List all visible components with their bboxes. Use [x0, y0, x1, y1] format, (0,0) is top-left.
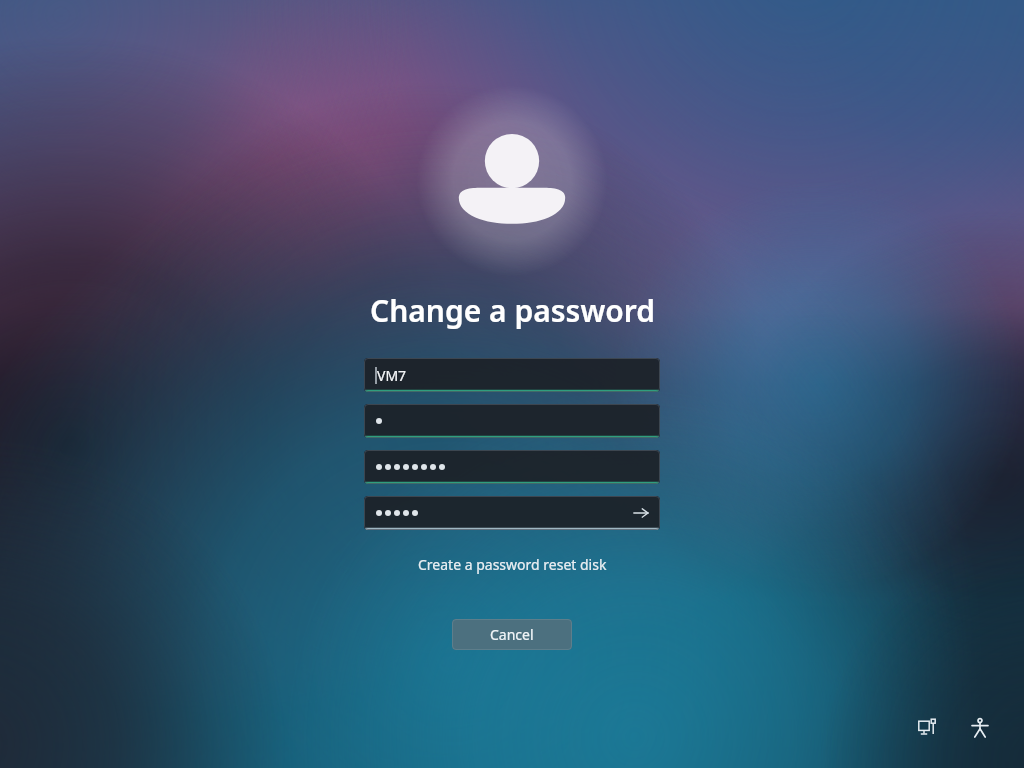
button[interactable]: Confirm password [364, 496, 660, 530]
button[interactable]: Cancel [452, 619, 572, 650]
button[interactable]: User name [364, 358, 660, 392]
button[interactable]: Create a password reset disk [412, 552, 613, 577]
staticText: Cancel [490, 625, 534, 644]
button[interactable]: Old password [364, 404, 660, 438]
staticText: Create a password reset disk [418, 555, 607, 574]
staticText: Change a password [370, 290, 655, 331]
button[interactable]: New password [364, 450, 660, 484]
button[interactable]: Network [912, 712, 944, 744]
staticText: VM7 [377, 366, 407, 385]
button[interactable]: Submit [628, 500, 654, 526]
button[interactable]: Ease of access [964, 712, 996, 744]
